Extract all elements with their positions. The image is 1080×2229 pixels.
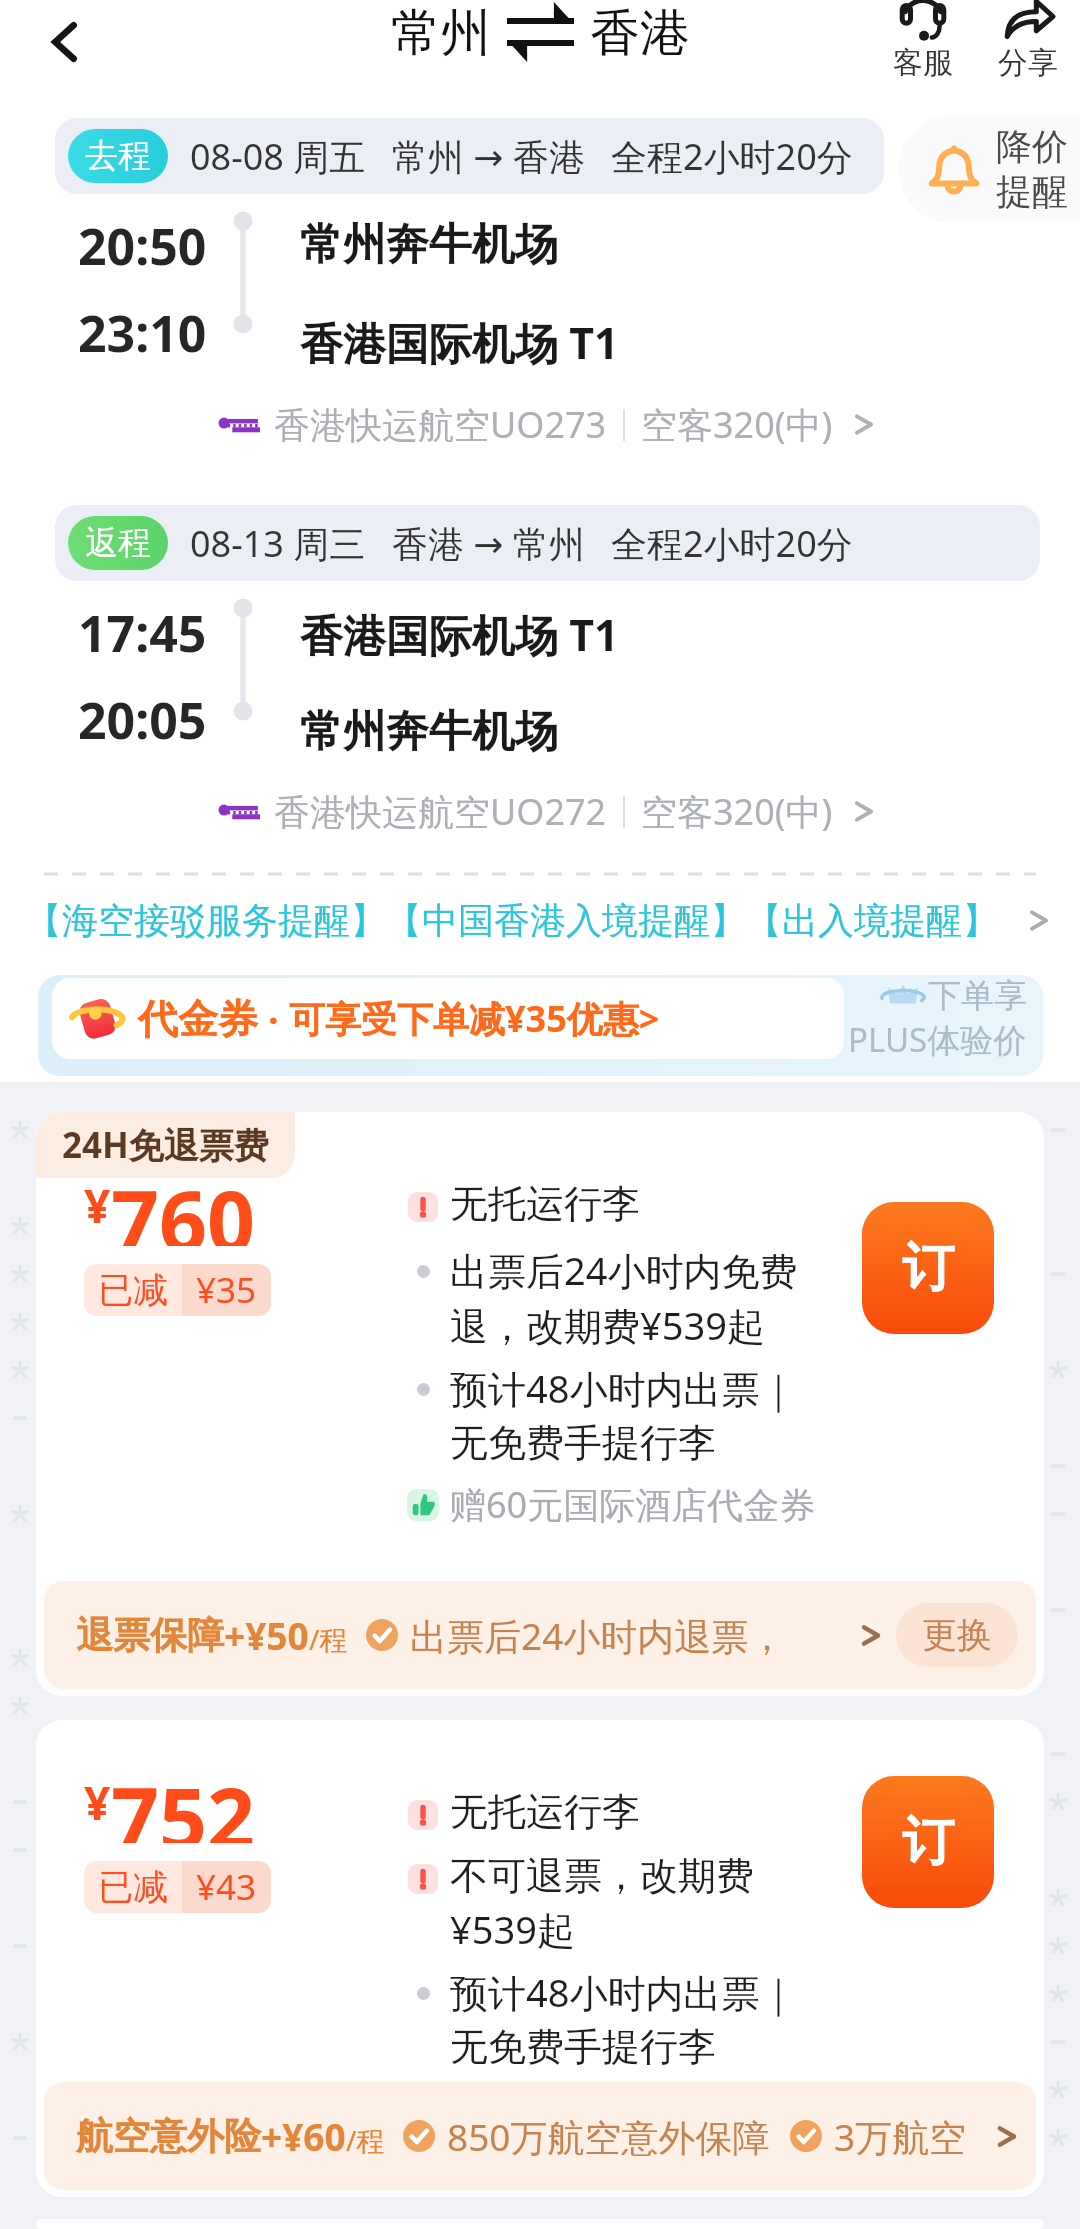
button[interactable]: 更换 <box>896 1603 1018 1667</box>
staticText: 更换 <box>922 1613 992 1657</box>
staticText: 无托运行李 <box>450 1180 640 1228</box>
button[interactable]: 退票保障 <box>44 1581 1036 1689</box>
staticText: 17:45 <box>78 599 207 667</box>
staticText: 航空意外险 <box>76 2113 261 2160</box>
staticText: 08-13 周三 <box>190 519 366 568</box>
staticText: 香港快运航空UO272 <box>274 787 607 836</box>
staticText: · <box>258 993 289 1045</box>
staticText: 出票后24小时内退票， <box>410 1610 786 1661</box>
staticText: 08-08 周五 <box>190 132 366 181</box>
staticText: 全程2小时20分 <box>611 519 853 568</box>
staticText: 空客320(中) <box>641 400 833 449</box>
staticText: 赠60元国际酒店代金券 <box>450 1480 816 1529</box>
staticText: 香港国际机场 T1 <box>300 605 619 664</box>
staticText: 提醒 <box>996 169 1068 214</box>
staticText: 已减 <box>98 1268 168 1312</box>
staticText: ¥ <box>84 1771 111 1834</box>
button[interactable]: 降价 <box>899 115 1080 223</box>
staticText: 常州奔牛机场 <box>300 218 558 272</box>
staticText: 订 <box>902 1809 954 1875</box>
button[interactable]: 代金券 <box>38 975 1043 1076</box>
staticText: 降价 <box>996 124 1068 169</box>
staticText: 3万航空 <box>834 2111 967 2162</box>
staticText: ¥35 <box>196 1266 257 1314</box>
staticText: 常州 <box>391 2 491 65</box>
button[interactable]: 香港快运航空UO273 <box>0 400 1080 449</box>
staticText: ¥ <box>84 1174 111 1237</box>
staticText: 退票保障 <box>76 1612 224 1659</box>
staticText: 代金券 <box>138 994 258 1044</box>
staticText: PLUS体验价 <box>848 1017 1027 1062</box>
button[interactable]: 订 <box>862 1202 994 1334</box>
staticText: 空客320(中) <box>641 787 833 836</box>
staticText: 常州 → 香港 <box>392 132 585 181</box>
staticText: +¥50 <box>224 1610 309 1660</box>
staticText: 已减 <box>98 1865 168 1909</box>
staticText: 20:50 <box>78 212 207 280</box>
button[interactable]: 客服 <box>870 0 975 86</box>
staticText: 预计48小时内出票｜ 无免费手提行李 <box>450 1966 797 2072</box>
staticText: 香港 → 常州 <box>392 519 585 568</box>
button[interactable]: 分享 <box>975 0 1080 86</box>
staticText: 香港 <box>590 2 690 65</box>
staticText: 752 <box>111 1759 256 1843</box>
staticText: 【海空接驳服务提醒】【中国香港入境提醒】【出入境提醒】 <box>26 898 998 943</box>
button[interactable]: 航空意外险 <box>44 2082 1036 2190</box>
staticText: 出票后24小时内免费 退，改期费¥539起 <box>450 1244 798 1352</box>
staticText: ¥43 <box>196 1863 257 1911</box>
staticText: 850万航空意外保障 <box>447 2111 770 2162</box>
staticText: 预计48小时内出票｜ 无免费手提行李 <box>450 1362 797 1468</box>
staticText: 可享受下单减¥35优惠> <box>289 994 660 1043</box>
button[interactable]: 订 <box>862 1776 994 1908</box>
staticText: 下单享 <box>928 975 1027 1017</box>
staticText: 去程 <box>85 135 151 177</box>
staticText: 23:10 <box>78 299 207 367</box>
staticText: 返程 <box>85 522 151 564</box>
button[interactable]: 香港快运航空UO272 <box>0 787 1080 836</box>
staticText: 分享 <box>998 44 1058 82</box>
staticText: /程 <box>346 2121 385 2159</box>
staticText: 不可退票，改期费 ¥539起 <box>450 1852 754 1956</box>
staticText: 无托运行李 <box>450 1788 640 1836</box>
staticText: 订 <box>902 1235 954 1301</box>
staticText: /程 <box>309 1620 348 1658</box>
button[interactable]: Back <box>26 4 102 80</box>
staticText: 24H免退票费 <box>62 1121 269 1169</box>
staticText: 客服 <box>893 44 953 82</box>
staticText: 香港国际机场 T1 <box>300 313 619 372</box>
staticText: 全程2小时20分 <box>611 132 853 181</box>
staticText: 760 <box>111 1162 256 1246</box>
staticText: 20:05 <box>78 686 207 754</box>
staticText: +¥60 <box>261 2111 346 2161</box>
staticText: 香港快运航空UO273 <box>274 400 607 449</box>
staticText: 常州奔牛机场 <box>300 705 558 759</box>
button[interactable]: 【海空接驳服务提醒】【中国香港入境提醒】【出入境提醒】 <box>0 876 1080 975</box>
